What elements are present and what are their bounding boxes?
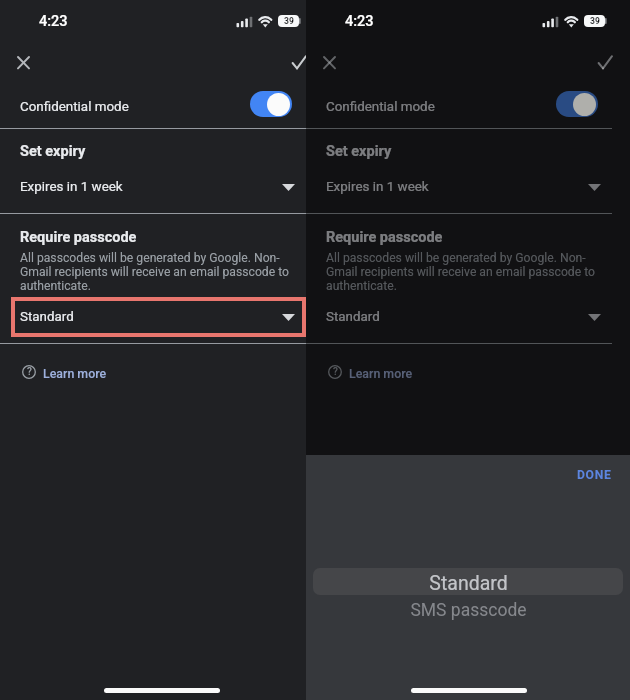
- staticText: 4:23: [345, 13, 374, 30]
- staticText: Standard: [20, 309, 74, 325]
- button[interactable]: Close: [5, 46, 41, 82]
- button[interactable]: DONE: [567, 459, 622, 491]
- staticText: Expires in 1 week: [326, 179, 429, 195]
- button[interactable]: Save: [282, 46, 310, 74]
- button[interactable]: [0, 84, 306, 129]
- staticText: Confidential mode: [326, 99, 435, 115]
- staticText: ?: [333, 366, 338, 378]
- staticText: Require passcode: [20, 229, 137, 246]
- staticText: Set expiry: [20, 143, 86, 160]
- button[interactable]: [306, 355, 612, 391]
- staticText: Standard: [326, 309, 380, 325]
- button[interactable]: [306, 170, 612, 208]
- staticText: All passcodes will be generated by Googl…: [20, 251, 310, 293]
- button[interactable]: Save: [588, 46, 616, 74]
- staticText: 4:23: [39, 13, 68, 30]
- staticText: Expires in 1 week: [20, 179, 123, 195]
- staticText: Set expiry: [326, 143, 392, 160]
- button[interactable]: [0, 170, 306, 208]
- button[interactable]: Confidential mode toggle: [244, 85, 300, 123]
- staticText: SMS passcode: [410, 600, 527, 621]
- staticText: 39: [590, 16, 600, 26]
- button[interactable]: [0, 300, 306, 336]
- staticText: Require passcode: [326, 229, 443, 246]
- button[interactable]: Close: [311, 46, 347, 82]
- staticText: ?: [27, 366, 32, 378]
- staticText: Standard: [429, 572, 508, 595]
- staticText: 39: [284, 16, 294, 26]
- button[interactable]: [306, 84, 612, 129]
- button[interactable]: [306, 300, 612, 336]
- button[interactable]: Confidential mode toggle: [550, 85, 606, 123]
- button[interactable]: [0, 355, 306, 391]
- staticText: DONE: [577, 468, 612, 482]
- staticText: Learn more: [43, 366, 107, 381]
- staticText: Confidential mode: [20, 99, 129, 115]
- staticText: Learn more: [349, 366, 413, 381]
- staticText: All passcodes will be generated by Googl…: [326, 251, 616, 293]
